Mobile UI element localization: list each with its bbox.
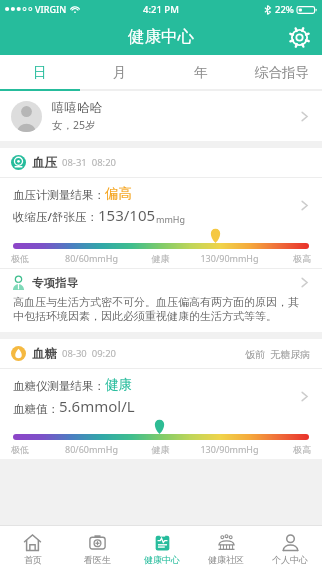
button[interactable]: 血糖 bbox=[0, 339, 322, 368]
staticText: 130/90mmHg bbox=[189, 252, 270, 264]
staticText: 80/60mmHg bbox=[51, 443, 132, 455]
staticText: 极高 bbox=[270, 444, 311, 455]
button[interactable]: 综合指导 bbox=[241, 55, 322, 89]
staticText: 血糖仪测量结果： bbox=[13, 379, 105, 393]
button[interactable]: 健康社区 bbox=[194, 526, 258, 572]
staticText: 女，25岁 bbox=[52, 118, 96, 132]
staticText: 高血压与生活方式密不可分。血压偏高有两方面的原因，其中包括环境因素，因此必须重视… bbox=[13, 295, 309, 323]
staticText: 血糖 bbox=[32, 346, 57, 362]
button[interactable]: 专项指导 bbox=[0, 269, 322, 290]
staticText: 130/90mmHg bbox=[189, 443, 270, 455]
button[interactable]: 看医生 bbox=[65, 526, 130, 572]
staticText: 153/105 bbox=[98, 205, 156, 225]
staticText: 血压 bbox=[32, 155, 57, 171]
staticText: 血压计测量结果： bbox=[13, 188, 105, 202]
button[interactable]: 首页 bbox=[0, 526, 65, 572]
staticText: 月 bbox=[113, 64, 127, 81]
button[interactable]: 嘻嘻哈哈 bbox=[0, 91, 322, 141]
staticText: 看医生 bbox=[84, 554, 111, 565]
staticText: 个人中心 bbox=[272, 554, 308, 565]
button[interactable]: 年 bbox=[160, 55, 241, 89]
staticText: 专项指导 bbox=[32, 276, 78, 290]
staticText: 日 bbox=[33, 64, 47, 81]
staticText: 健康中心 bbox=[144, 554, 180, 565]
staticText: 健康 bbox=[132, 253, 189, 264]
button[interactable]: 血糖仪测量结果： bbox=[0, 369, 322, 419]
staticText: 健康 bbox=[105, 376, 132, 393]
staticText: 5.6mmol/L bbox=[59, 396, 135, 416]
staticText: 健康 bbox=[132, 444, 189, 455]
staticText: 4:21 PM bbox=[143, 3, 179, 16]
staticText: 收缩压/舒张压： bbox=[13, 209, 98, 225]
staticText: mmHg bbox=[156, 213, 186, 225]
staticText: 08-30 09:20 bbox=[62, 347, 117, 360]
staticText: 综合指导 bbox=[255, 64, 309, 81]
staticText: 首页 bbox=[24, 554, 42, 565]
staticText: 08-31 08:20 bbox=[62, 156, 117, 169]
button[interactable]: 健康中心 bbox=[130, 526, 194, 572]
staticText: 健康社区 bbox=[208, 554, 244, 565]
button[interactable]: 月 bbox=[80, 55, 160, 89]
button[interactable]: 个人中心 bbox=[258, 526, 322, 572]
button[interactable]: 血压 bbox=[0, 148, 322, 177]
staticText: 年 bbox=[194, 64, 208, 81]
staticText: 偏高 bbox=[105, 185, 132, 202]
staticText: 嘻嘻哈哈 bbox=[52, 100, 102, 116]
button[interactable]: Settings bbox=[282, 20, 316, 54]
staticText: 极低 bbox=[11, 253, 51, 264]
staticText: 血糖值： bbox=[13, 402, 59, 416]
staticText: 80/60mmHg bbox=[51, 252, 132, 264]
staticText: 22% bbox=[275, 3, 294, 16]
staticText: 极低 bbox=[11, 444, 51, 455]
staticText: VIRGIN bbox=[35, 3, 67, 15]
button[interactable]: 日 bbox=[0, 55, 80, 89]
staticText: 极高 bbox=[270, 253, 311, 264]
staticText: 饭前 无糖尿病 bbox=[245, 347, 311, 361]
button[interactable]: 血压计测量结果： bbox=[0, 178, 322, 228]
staticText: 健康中心 bbox=[128, 26, 194, 47]
